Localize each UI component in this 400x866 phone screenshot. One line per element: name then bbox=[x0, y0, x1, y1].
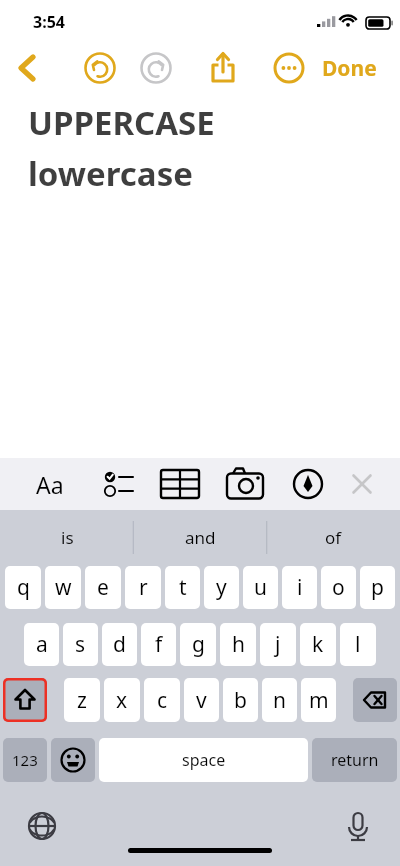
button[interactable]: o bbox=[321, 566, 356, 609]
button[interactable]: More bbox=[265, 44, 313, 92]
staticText: v bbox=[196, 686, 207, 715]
button[interactable]: Undo bbox=[76, 44, 124, 92]
staticText: is bbox=[61, 526, 74, 549]
button[interactable]: Redo bbox=[132, 44, 180, 92]
staticText: q bbox=[17, 573, 30, 602]
button[interactable]: and bbox=[134, 510, 267, 565]
staticText: l bbox=[355, 630, 361, 659]
staticText: a bbox=[36, 630, 48, 659]
button[interactable]: v bbox=[184, 678, 219, 722]
staticText: f bbox=[155, 630, 163, 659]
button[interactable]: x bbox=[104, 678, 140, 722]
button[interactable]: a bbox=[24, 623, 59, 666]
staticText: n bbox=[273, 686, 286, 715]
button[interactable]: f bbox=[141, 623, 176, 666]
button[interactable]: c bbox=[144, 678, 180, 722]
staticText: t bbox=[179, 573, 187, 602]
button[interactable]: i bbox=[282, 566, 317, 609]
staticText: k bbox=[312, 630, 324, 659]
staticText: return bbox=[331, 749, 379, 771]
button[interactable]: Emoji bbox=[51, 738, 95, 782]
button[interactable]: Done bbox=[322, 54, 377, 83]
button[interactable]: 123 bbox=[3, 738, 47, 782]
button[interactable]: Camera bbox=[221, 458, 269, 510]
button[interactable]: Checklist bbox=[93, 458, 141, 510]
staticText: and bbox=[185, 526, 216, 549]
button[interactable]: Markup bbox=[284, 458, 332, 510]
staticText: space bbox=[182, 749, 226, 771]
staticText: lowercase bbox=[28, 151, 193, 196]
button[interactable]: r bbox=[125, 566, 161, 609]
button[interactable]: m bbox=[301, 678, 336, 722]
staticText: Aa bbox=[36, 469, 64, 500]
button[interactable]: h bbox=[220, 623, 256, 666]
button[interactable]: Change keyboard bbox=[20, 804, 64, 848]
button[interactable]: Close keyboard bbox=[340, 458, 384, 510]
button[interactable]: s bbox=[63, 623, 98, 666]
button[interactable]: k bbox=[300, 623, 336, 666]
button[interactable]: Share bbox=[199, 44, 247, 92]
staticText: b bbox=[234, 686, 247, 715]
button[interactable]: Table bbox=[156, 458, 204, 510]
button[interactable]: p bbox=[360, 566, 395, 609]
staticText: UPPERCASE bbox=[28, 100, 215, 145]
button[interactable]: n bbox=[262, 678, 297, 722]
staticText: o bbox=[332, 573, 345, 602]
staticText: w bbox=[55, 573, 72, 602]
button[interactable]: t bbox=[165, 566, 200, 609]
button[interactable]: is bbox=[0, 510, 134, 565]
button[interactable]: l bbox=[340, 623, 376, 666]
button[interactable]: Backspace bbox=[353, 678, 397, 722]
button[interactable]: of bbox=[267, 510, 400, 565]
button[interactable]: g bbox=[180, 623, 216, 666]
staticText: s bbox=[75, 630, 86, 659]
staticText: r bbox=[139, 573, 148, 602]
staticText: 3:54 bbox=[33, 11, 65, 33]
staticText: e bbox=[97, 573, 109, 602]
button[interactable]: return bbox=[312, 738, 397, 782]
staticText: i bbox=[297, 573, 303, 602]
button[interactable]: u bbox=[243, 566, 278, 609]
staticText: c bbox=[157, 686, 168, 715]
button[interactable]: y bbox=[204, 566, 239, 609]
staticText: of bbox=[325, 526, 342, 549]
button[interactable]: z bbox=[64, 678, 100, 722]
staticText: j bbox=[275, 630, 281, 659]
staticText: 123 bbox=[12, 750, 38, 770]
staticText: d bbox=[113, 630, 126, 659]
button[interactable]: q bbox=[5, 566, 41, 609]
button[interactable]: j bbox=[260, 623, 296, 666]
staticText: p bbox=[371, 573, 384, 602]
staticText: u bbox=[254, 573, 267, 602]
button[interactable]: Text format bbox=[26, 458, 74, 510]
staticText: m bbox=[309, 686, 329, 715]
staticText: g bbox=[192, 630, 205, 659]
staticText: z bbox=[77, 686, 87, 715]
button[interactable]: Dictation bbox=[336, 804, 380, 848]
staticText: h bbox=[232, 630, 245, 659]
button[interactable]: Back bbox=[3, 44, 51, 92]
staticText: y bbox=[216, 573, 227, 602]
staticText: x bbox=[116, 686, 128, 715]
button[interactable]: Shift bbox=[3, 678, 47, 722]
button[interactable]: b bbox=[223, 678, 258, 722]
button[interactable]: space bbox=[99, 738, 308, 782]
button[interactable]: e bbox=[85, 566, 121, 609]
button[interactable]: w bbox=[45, 566, 81, 609]
button[interactable]: d bbox=[102, 623, 137, 666]
